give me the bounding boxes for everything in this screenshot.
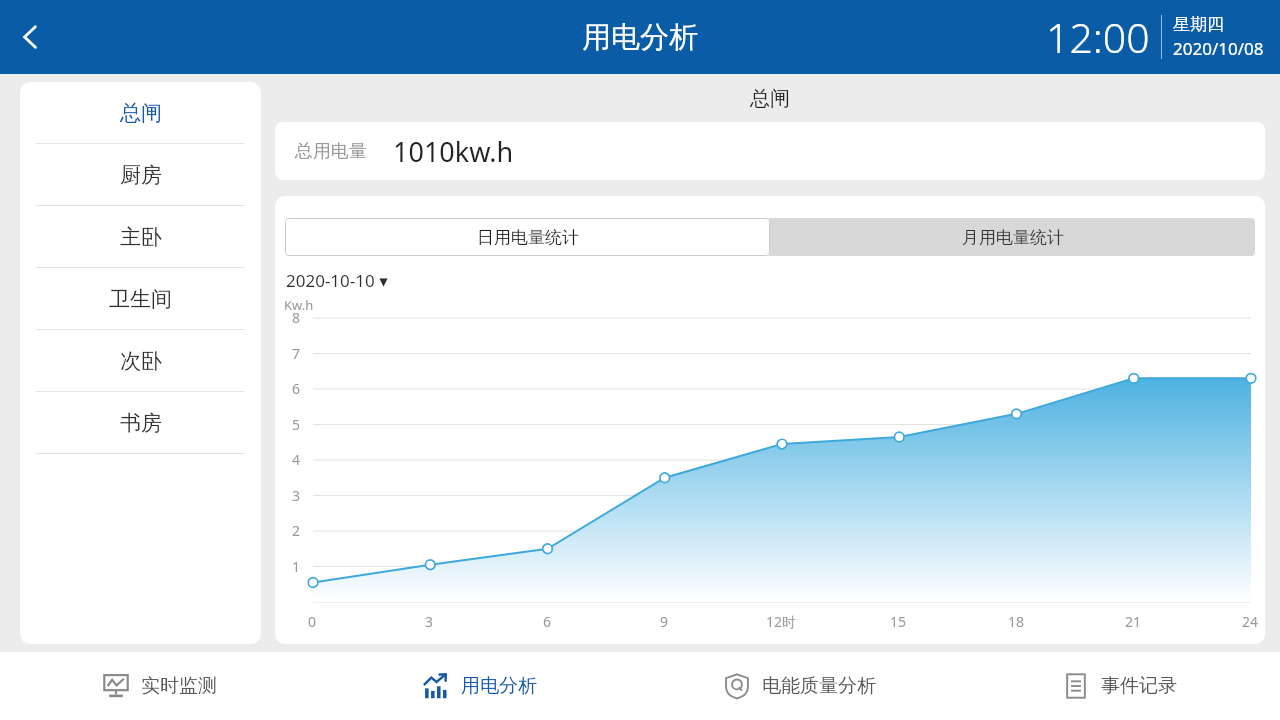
staticText: 电能质量分析 — [762, 674, 876, 698]
button[interactable]: 厨房 — [20, 144, 261, 205]
staticText: 2 — [292, 521, 301, 540]
staticText: 日用电量统计 — [477, 227, 579, 248]
staticText: 实时监测 — [141, 674, 217, 698]
button[interactable]: 书房 — [20, 392, 261, 453]
staticText: 12:00 — [1046, 9, 1150, 65]
staticText: 卫生间 — [109, 286, 172, 312]
staticText: 0 — [308, 612, 317, 631]
button[interactable]: 卫生间 — [20, 268, 261, 329]
button[interactable]: 2020-10-10 ▾ — [286, 269, 388, 292]
staticText: 事件记录 — [1101, 674, 1177, 698]
button[interactable]: 月用电量统计 — [770, 218, 1255, 256]
staticText: 总闸 — [120, 100, 162, 126]
staticText: 1010kw.h — [393, 133, 514, 170]
staticText: 星期四 — [1173, 14, 1224, 35]
staticText: 7 — [292, 344, 301, 363]
staticText: 用电分析 — [461, 674, 537, 698]
staticText: 5 — [292, 415, 301, 434]
staticText: 6 — [292, 379, 301, 398]
staticText: Kw.h — [284, 296, 314, 314]
button[interactable]: 次卧 — [20, 330, 261, 391]
staticText: 厨房 — [120, 162, 162, 188]
staticText: 24 — [1242, 612, 1259, 631]
button[interactable]: 总闸 — [20, 82, 261, 143]
staticText: 4 — [292, 450, 301, 469]
button[interactable]: 主卧 — [20, 206, 261, 267]
staticText: 12时 — [766, 612, 797, 631]
button[interactable]: 电能质量分析 — [640, 652, 960, 720]
staticText: 用电分析 — [582, 19, 698, 56]
staticText: 主卧 — [120, 224, 162, 250]
staticText: 次卧 — [120, 348, 162, 374]
staticText: 9 — [660, 612, 669, 631]
staticText: 月用电量统计 — [962, 227, 1064, 248]
staticText: 15 — [890, 612, 907, 631]
staticText: 1 — [292, 557, 301, 576]
staticText: 总用电量 — [295, 140, 367, 163]
button[interactable]: 实时监测 — [0, 652, 320, 720]
staticText: 18 — [1008, 612, 1025, 631]
staticText: 书房 — [120, 410, 162, 436]
staticText: 8 — [292, 308, 301, 327]
staticText: 21 — [1125, 612, 1142, 631]
button[interactable]: 日用电量统计 — [285, 218, 770, 256]
button[interactable]: 用电分析 — [320, 652, 640, 720]
staticText: 3 — [425, 612, 434, 631]
staticText: 2020/10/08 — [1173, 37, 1264, 60]
staticText: 总闸 — [750, 86, 790, 111]
button[interactable]: Back — [2, 9, 58, 65]
staticText: 3 — [292, 486, 301, 505]
button[interactable]: 事件记录 — [960, 652, 1280, 720]
staticText: 6 — [543, 612, 552, 631]
